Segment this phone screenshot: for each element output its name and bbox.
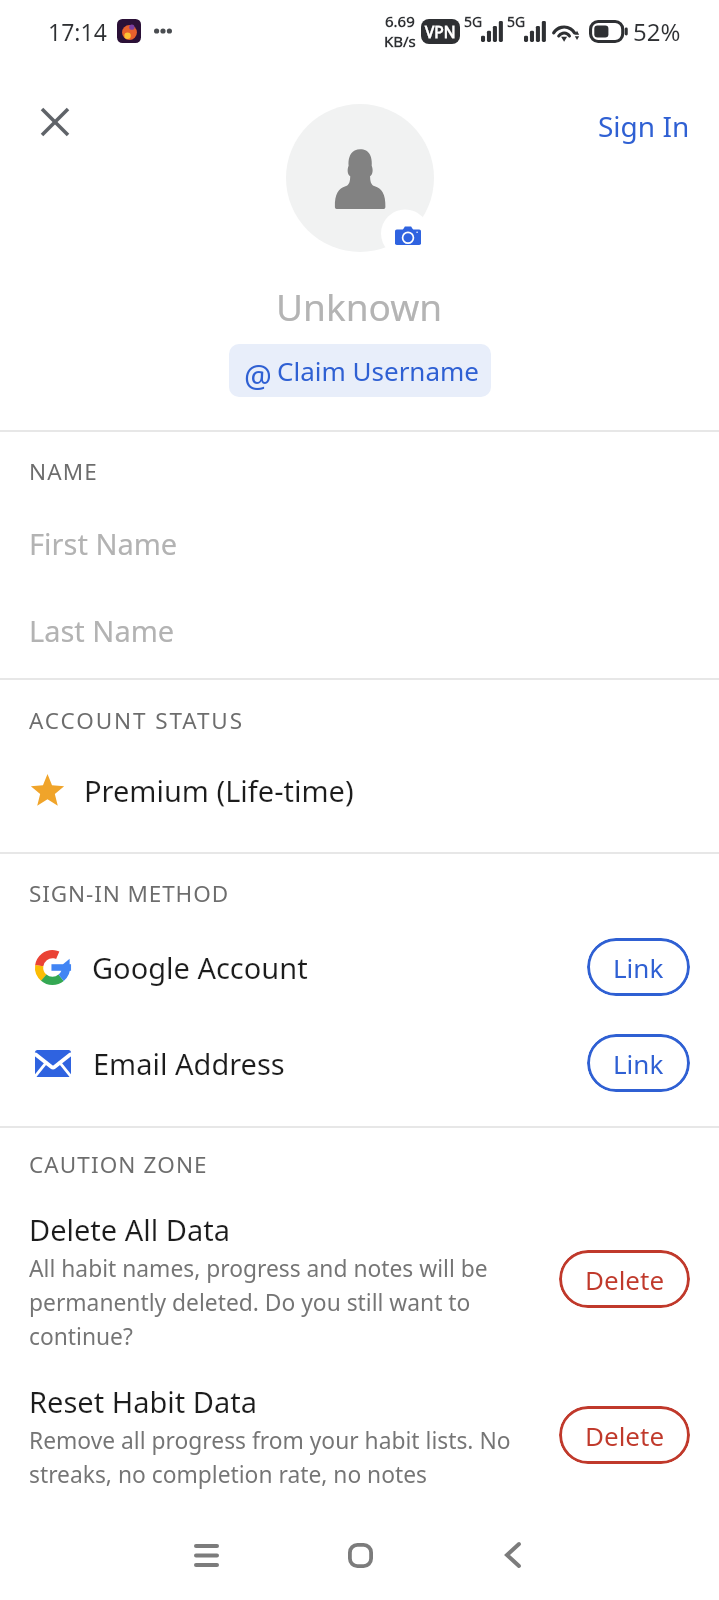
staticText: All habit names, progress and notes will… xyxy=(29,1253,529,1352)
button[interactable]: Premium (Life-time) xyxy=(0,760,719,820)
staticText: Premium (Life-time) xyxy=(84,771,354,810)
staticText: Email Address xyxy=(93,1044,285,1083)
button[interactable]: Delete xyxy=(559,1406,690,1464)
staticText: Delete xyxy=(585,1418,665,1453)
staticText: SIGN-IN METHOD xyxy=(29,878,229,909)
button[interactable]: Last Name xyxy=(0,603,719,658)
staticText: 5G xyxy=(507,12,526,31)
staticText: NAME xyxy=(29,456,98,487)
staticText: Delete xyxy=(585,1262,665,1297)
staticText: CAUTION ZONE xyxy=(29,1149,208,1180)
button[interactable]: Change profile photo xyxy=(286,104,434,252)
staticText: Unknown xyxy=(276,281,443,331)
staticText: First Name xyxy=(29,524,178,563)
staticText: KB/s xyxy=(384,31,416,51)
staticText: @ xyxy=(244,354,270,390)
staticText: Google Account xyxy=(92,948,308,987)
button[interactable]: First Name xyxy=(0,516,719,571)
button[interactable]: Back xyxy=(436,1508,590,1600)
button[interactable]: Google Account xyxy=(0,927,719,1007)
staticText: Sign In xyxy=(598,107,690,145)
staticText: Reset Habit Data xyxy=(29,1382,257,1421)
button[interactable]: Close xyxy=(29,96,81,148)
staticText: Link xyxy=(613,950,664,985)
staticText: Claim Username xyxy=(277,353,479,388)
staticText: Remove all progress from your habit list… xyxy=(29,1425,529,1490)
staticText: 52% xyxy=(633,15,681,48)
staticText: VPN xyxy=(425,21,456,42)
staticText: 17:14 xyxy=(48,16,107,47)
staticText: 5G xyxy=(464,12,483,31)
staticText: ACCOUNT STATUS xyxy=(29,705,244,736)
button[interactable]: Home xyxy=(283,1508,437,1600)
button[interactable]: Email Address xyxy=(0,1023,719,1103)
staticText: Last Name xyxy=(29,611,175,650)
staticText: Delete All Data xyxy=(29,1210,230,1249)
button[interactable]: Recent apps xyxy=(129,1508,283,1600)
staticText: Link xyxy=(613,1046,664,1081)
button[interactable]: Link xyxy=(587,1034,690,1092)
button[interactable]: @ xyxy=(229,344,491,397)
button[interactable]: Sign In xyxy=(588,101,700,151)
button[interactable]: Link xyxy=(587,938,690,996)
button[interactable]: Delete xyxy=(559,1250,690,1308)
staticText: 6.69 xyxy=(385,11,415,31)
